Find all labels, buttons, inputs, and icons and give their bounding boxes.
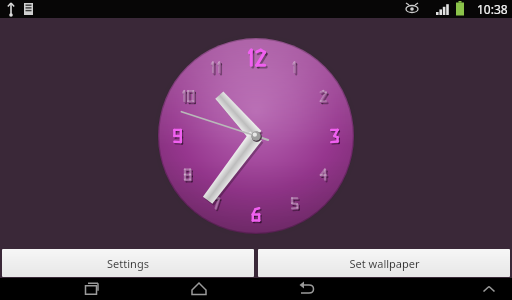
button[interactable]: Set wallpaper [258, 249, 510, 277]
button[interactable]: Recent apps [74, 278, 108, 300]
button[interactable]: Show notifications [472, 278, 506, 300]
button[interactable]: Analog clock [158, 38, 354, 234]
staticText: Set wallpaper [349, 256, 420, 271]
staticText: Settings [107, 256, 149, 271]
button[interactable]: Back [290, 278, 324, 300]
button[interactable]: Settings [2, 249, 254, 277]
staticText: 10:38 [477, 1, 508, 17]
button[interactable]: Home [182, 278, 216, 300]
